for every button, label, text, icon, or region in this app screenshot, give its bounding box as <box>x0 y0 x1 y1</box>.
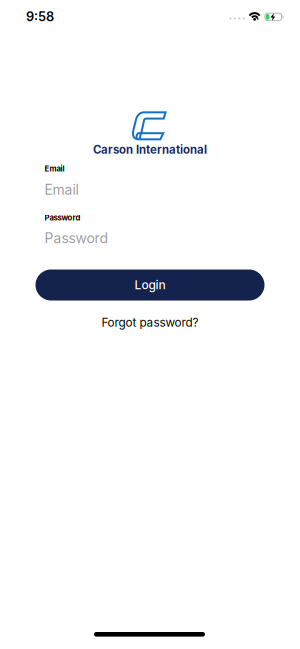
staticText: Login <box>134 278 165 292</box>
button[interactable]: Login <box>35 269 264 300</box>
button[interactable]: Password <box>45 224 265 252</box>
staticText: Password <box>45 230 108 247</box>
button[interactable]: Forgot password? <box>101 315 198 330</box>
staticText: Email <box>45 164 65 173</box>
staticText: Password <box>45 213 81 222</box>
button[interactable]: Email <box>45 176 265 204</box>
staticText: Carson International <box>93 143 207 156</box>
staticText: Email <box>45 181 79 198</box>
staticText: Forgot password? <box>101 315 198 330</box>
staticText: 9:58 <box>26 9 54 24</box>
